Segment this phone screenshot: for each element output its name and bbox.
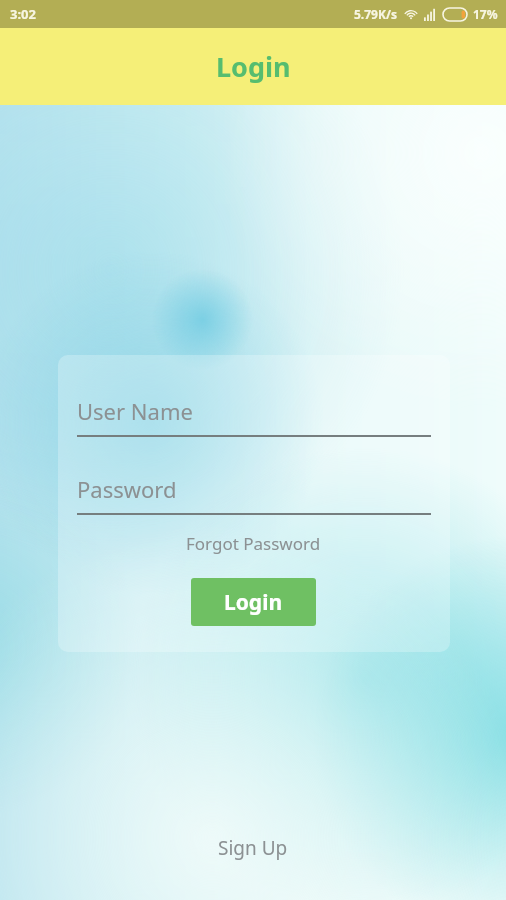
staticText: Sign Up bbox=[218, 835, 288, 861]
staticText: 5.79K/s bbox=[354, 6, 397, 22]
button[interactable]: Forgot Password bbox=[176, 529, 331, 557]
button[interactable]: User Name bbox=[77, 388, 431, 434]
button[interactable]: Login bbox=[191, 578, 316, 626]
staticText: Forgot Password bbox=[186, 532, 321, 555]
staticText: 3:02 bbox=[10, 5, 36, 23]
button[interactable]: Password bbox=[77, 466, 431, 512]
staticText: 17% bbox=[473, 6, 498, 22]
staticText: User Name bbox=[77, 396, 193, 426]
button[interactable]: Sign Up bbox=[193, 833, 313, 863]
staticText: Password bbox=[77, 474, 177, 504]
staticText: Login bbox=[224, 588, 283, 617]
staticText: Login bbox=[216, 48, 291, 85]
